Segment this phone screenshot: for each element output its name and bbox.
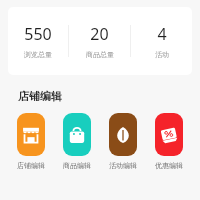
- button[interactable]: 活动编辑: [102, 113, 144, 170]
- button[interactable]: 商品编辑: [56, 113, 98, 170]
- staticText: 浏览总量: [24, 50, 52, 59]
- staticText: 店铺编辑: [18, 89, 62, 103]
- staticText: 550: [24, 23, 52, 45]
- staticText: 活动: [155, 50, 169, 59]
- staticText: 优惠编辑: [155, 161, 183, 170]
- button[interactable]: 550: [8, 23, 68, 59]
- button[interactable]: 优惠编辑: [148, 113, 190, 170]
- button[interactable]: 4: [131, 23, 192, 59]
- button[interactable]: 550: [8, 7, 192, 75]
- staticText: 商品总量: [86, 50, 114, 59]
- button[interactable]: 店铺编辑: [10, 113, 52, 170]
- staticText: 活动编辑: [109, 161, 137, 170]
- staticText: 商品编辑: [63, 161, 91, 170]
- staticText: 店铺编辑: [17, 161, 45, 170]
- staticText: 4: [157, 23, 167, 45]
- button[interactable]: 20: [69, 23, 130, 59]
- staticText: 20: [90, 23, 109, 45]
